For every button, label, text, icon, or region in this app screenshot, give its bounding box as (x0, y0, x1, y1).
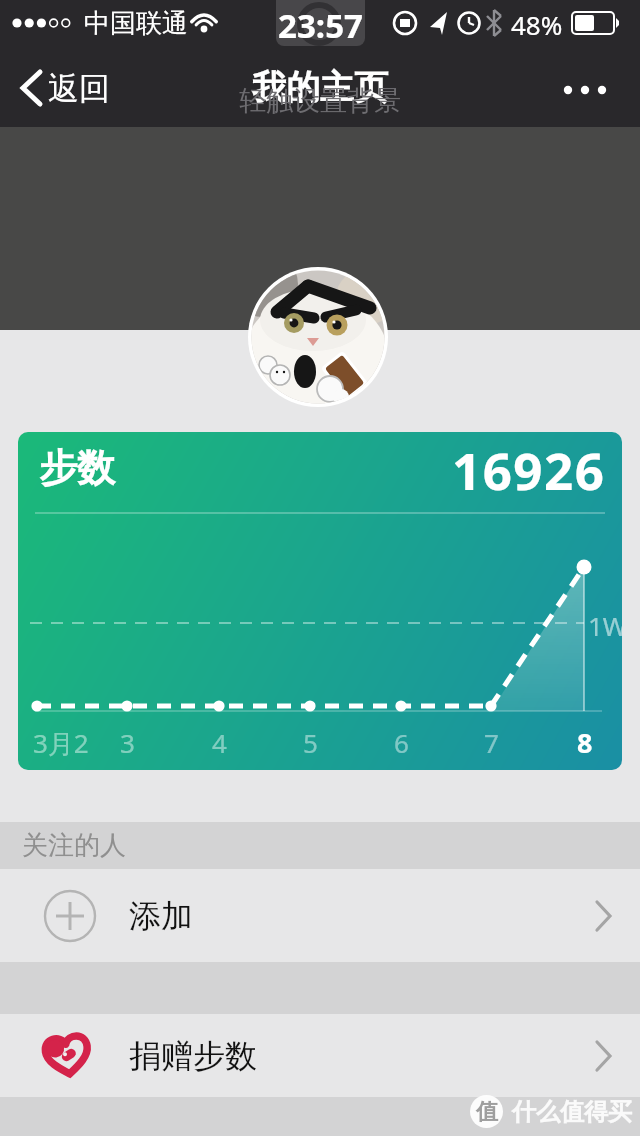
staticText: 6 (394, 725, 409, 760)
staticText: 48% (511, 7, 563, 42)
button[interactable]: 捐赠步数 (0, 1014, 640, 1097)
button[interactable]: 返回 (18, 68, 110, 108)
staticText: 我的主页 (252, 66, 388, 109)
staticText: 步数 (39, 444, 115, 492)
staticText: 中国联通 (84, 7, 188, 40)
staticText: 3月2 (33, 725, 89, 761)
staticText: 什么值得买 (512, 1097, 632, 1127)
staticText: 5 (303, 725, 318, 760)
button[interactable]: 添加 (0, 869, 640, 962)
staticText: 4 (212, 725, 227, 760)
staticText: 添加 (129, 896, 193, 936)
staticText: 8 (577, 724, 593, 761)
staticText: 返回 (48, 69, 110, 108)
staticText: 捐赠步数 (129, 1036, 257, 1076)
staticText: 7 (484, 725, 499, 760)
button[interactable] (560, 68, 616, 108)
staticText: 值 (476, 1098, 498, 1126)
staticText: 16926 (452, 435, 606, 504)
staticText: 轻触设置背景 (0, 84, 640, 118)
staticText: 1W (588, 608, 622, 643)
staticText: 3 (120, 725, 135, 760)
staticText: 23:57 (276, 3, 365, 48)
button[interactable]: 步数 (18, 432, 622, 770)
staticText: 关注的人 (22, 829, 126, 862)
